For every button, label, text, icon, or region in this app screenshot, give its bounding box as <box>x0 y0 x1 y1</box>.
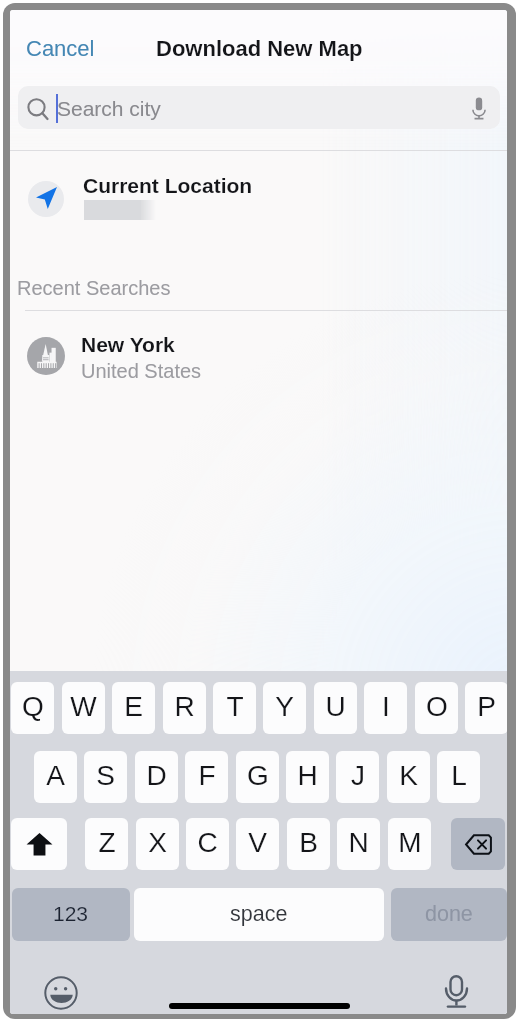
button[interactable]: 123 <box>12 888 130 941</box>
button[interactable]: Emoji keyboard <box>44 976 78 1010</box>
staticText: D <box>146 760 167 791</box>
button[interactable]: T <box>213 682 256 734</box>
staticText: P <box>477 691 496 722</box>
button[interactable]: Backspace <box>451 818 505 870</box>
button[interactable]: R <box>163 682 206 734</box>
button[interactable]: K <box>387 751 430 803</box>
staticText: R <box>174 691 195 722</box>
button[interactable]: V <box>236 818 279 870</box>
staticText: L <box>451 760 467 791</box>
staticText: G <box>247 760 269 791</box>
button[interactable]: I <box>364 682 407 734</box>
staticText: Z <box>98 827 116 858</box>
staticText: W <box>70 691 97 722</box>
staticText: F <box>198 760 216 791</box>
button[interactable]: U <box>314 682 357 734</box>
button[interactable]: Q <box>11 682 54 734</box>
button[interactable]: B <box>287 818 330 870</box>
button[interactable]: N <box>337 818 380 870</box>
staticText: United States <box>81 360 202 382</box>
staticText: New York <box>81 333 175 356</box>
staticText: Q <box>22 691 44 722</box>
staticText: Current Location <box>83 174 253 197</box>
button[interactable]: H <box>286 751 329 803</box>
staticText: Y <box>275 691 294 722</box>
button[interactable]: Cancel <box>16 29 105 68</box>
button[interactable]: Voice search <box>471 97 487 120</box>
staticText: U <box>325 691 346 722</box>
staticText: X <box>148 827 167 858</box>
button[interactable]: Current Location <box>10 150 507 268</box>
button[interactable]: J <box>336 751 379 803</box>
staticText: space <box>230 902 288 926</box>
staticText: O <box>426 691 448 722</box>
staticText: H <box>297 760 318 791</box>
button[interactable]: G <box>236 751 279 803</box>
button[interactable]: F <box>185 751 228 803</box>
staticText: M <box>398 827 422 858</box>
staticText: V <box>248 827 267 858</box>
button[interactable]: M <box>388 818 431 870</box>
staticText: done <box>425 902 473 926</box>
staticText: 123 <box>53 902 89 925</box>
staticText: Recent Searches <box>17 277 171 299</box>
staticText: A <box>46 760 65 791</box>
button[interactable]: Dictation <box>445 973 468 1008</box>
button[interactable]: X <box>136 818 179 870</box>
button[interactable]: L <box>437 751 480 803</box>
staticText: Download New Map <box>156 36 363 61</box>
button[interactable]: C <box>186 818 229 870</box>
staticText: B <box>299 827 318 858</box>
button[interactable]: P <box>465 682 507 734</box>
button[interactable]: A <box>34 751 77 803</box>
staticText: E <box>124 691 143 722</box>
button[interactable]: Search city <box>18 86 500 129</box>
button[interactable]: Z <box>85 818 128 870</box>
button[interactable]: W <box>62 682 105 734</box>
staticText: Search city <box>57 97 161 120</box>
staticText: J <box>351 760 365 791</box>
staticText: C <box>197 827 218 858</box>
button[interactable]: done <box>391 888 507 941</box>
button[interactable]: O <box>415 682 458 734</box>
staticText: K <box>399 760 418 791</box>
button[interactable]: Shift <box>11 818 67 870</box>
button[interactable]: S <box>84 751 127 803</box>
staticText: I <box>382 691 390 722</box>
staticText: T <box>226 691 244 722</box>
button[interactable]: E <box>112 682 155 734</box>
button[interactable]: space <box>134 888 384 941</box>
button[interactable]: New York <box>10 310 507 392</box>
button[interactable]: Y <box>263 682 306 734</box>
staticText: S <box>96 760 115 791</box>
staticText: N <box>348 827 369 858</box>
button[interactable]: D <box>135 751 178 803</box>
